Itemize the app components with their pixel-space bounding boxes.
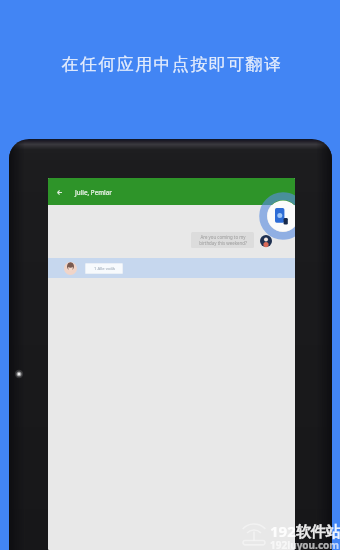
button[interactable]: Are you coming to my birthday this weeke… (191, 232, 254, 248)
staticText: 192luyou.com (270, 538, 340, 550)
button[interactable]: 1 Alle voilà (48, 258, 295, 278)
button[interactable]: Back (51, 184, 67, 200)
staticText: 1 Alle voilà (94, 266, 115, 272)
staticText: Julie, Pemlar (75, 188, 112, 196)
staticText: Are you coming to my birthday this weeke… (199, 234, 247, 246)
staticText: 192软件站 (270, 521, 340, 541)
button[interactable]: Back (48, 178, 295, 205)
button[interactable]: Tap to translate (259, 192, 295, 240)
button[interactable]: 1 Alle voilà (85, 263, 123, 274)
staticText: 在任何应用中点按即可翻译 (2, 54, 340, 75)
